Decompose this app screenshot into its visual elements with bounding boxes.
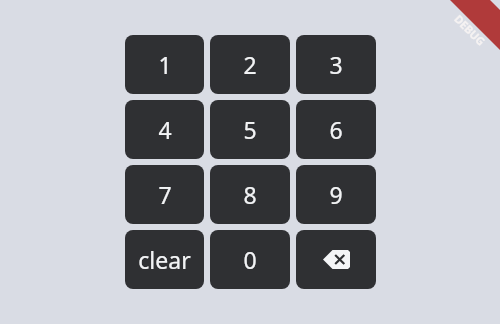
button[interactable]: clear [125,230,204,289]
staticText: clear [138,244,191,275]
button[interactable]: 7 [125,165,204,224]
staticText: 6 [329,114,343,145]
staticText: 4 [158,114,172,145]
button[interactable]: 5 [210,100,290,159]
button[interactable]: 9 [296,165,376,224]
staticText: 7 [158,179,172,210]
staticText: 2 [243,49,257,80]
button[interactable]: 6 [296,100,376,159]
staticText: 5 [243,114,257,145]
button[interactable]: Backspace [296,230,376,289]
staticText: 8 [243,179,257,210]
button[interactable]: 4 [125,100,204,159]
button[interactable]: 8 [210,165,290,224]
staticText: 0 [243,244,257,275]
staticText: 3 [329,49,343,80]
button[interactable]: 1 [125,35,204,94]
button[interactable]: 3 [296,35,376,94]
button[interactable]: 2 [210,35,290,94]
staticText: 9 [329,179,343,210]
staticText: 1 [158,49,172,80]
button[interactable]: 0 [210,230,290,289]
